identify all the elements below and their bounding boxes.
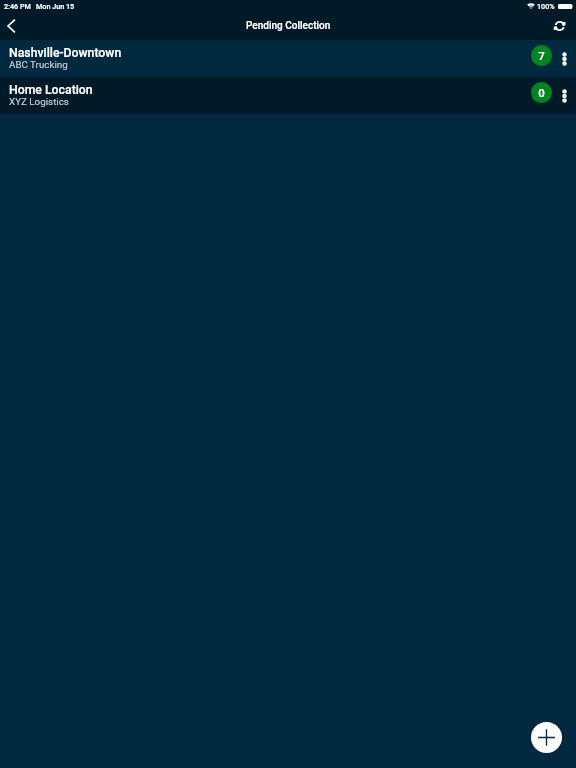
button[interactable]: Add [531, 722, 562, 753]
staticText: 7 [538, 49, 545, 62]
button[interactable]: More options [552, 41, 576, 77]
staticText: ABC Trucking [9, 59, 68, 70]
staticText: XYZ Logistics [9, 96, 69, 107]
staticText: 100% [537, 2, 555, 10]
staticText: 0 [538, 86, 545, 99]
button[interactable]: Home Location [0, 77, 576, 114]
staticText: Home Location [9, 83, 93, 97]
staticText: Pending Collection [246, 20, 331, 32]
button[interactable]: More options [552, 78, 576, 114]
button[interactable]: Back [1, 16, 21, 36]
staticText: Nashville-Downtown [9, 46, 122, 60]
staticText: Mon Jun 15 [36, 2, 75, 10]
staticText: 2:46 PM [4, 2, 31, 10]
button[interactable]: Refresh [549, 15, 571, 37]
button[interactable]: Nashville-Downtown [0, 40, 576, 77]
